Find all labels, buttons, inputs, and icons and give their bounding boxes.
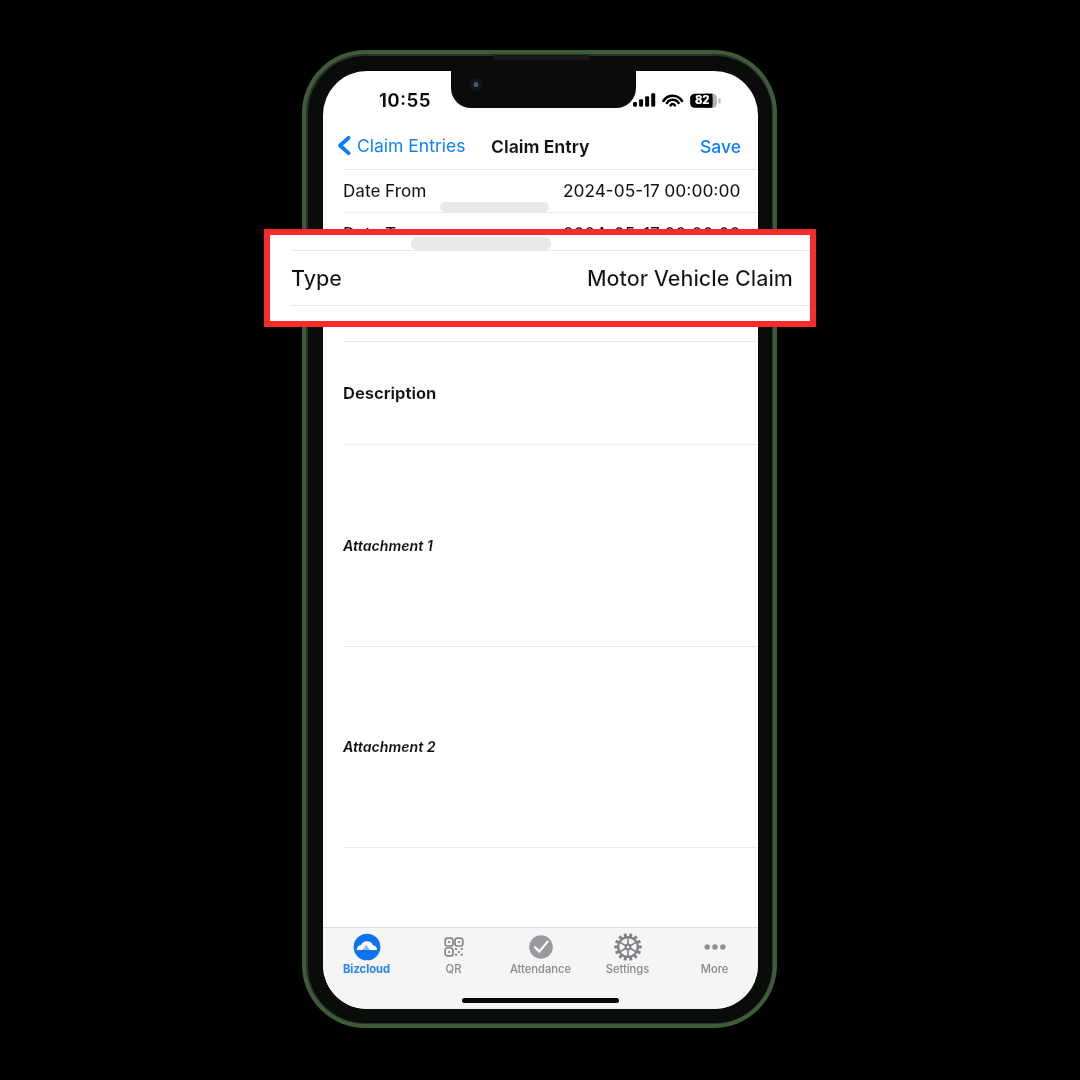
button[interactable]: Type [323, 256, 758, 299]
button[interactable]: Save [694, 125, 746, 167]
button[interactable]: Bizcloud [323, 927, 410, 987]
button[interactable]: More [671, 927, 758, 987]
button[interactable]: Date From [323, 170, 758, 213]
button[interactable]: Attendance [497, 927, 584, 987]
staticText: 82 [695, 93, 710, 107]
staticText: QR [410, 962, 497, 976]
button[interactable]: QR scanner [410, 927, 497, 987]
staticText: Bizcloud [323, 962, 410, 976]
staticText: Type [291, 265, 342, 291]
staticText: Claim Entries [357, 135, 466, 156]
staticText: Settings [584, 962, 671, 976]
staticText: Save [700, 136, 741, 157]
button[interactable]: Claim Entries [334, 124, 470, 166]
button[interactable]: Attachment 1 [323, 444, 758, 646]
staticText: Date From [343, 181, 427, 202]
button[interactable]: Description [323, 341, 758, 444]
staticText: No [717, 310, 741, 331]
staticText: Attachment 1 [343, 537, 433, 554]
staticText: Motor Vehicle Claim [578, 267, 741, 288]
button[interactable]: Is OT [323, 299, 758, 342]
button[interactable]: Settings [584, 927, 671, 987]
button[interactable]: Date To [323, 213, 758, 256]
staticText: More [671, 962, 758, 976]
staticText: Attachment 2 [343, 738, 436, 755]
button[interactable]: Attachment 2 [323, 646, 758, 847]
button[interactable]: Type [270, 250, 810, 305]
staticText: Description [343, 383, 437, 403]
staticText: Is OT [343, 310, 385, 331]
staticText: Date To [343, 224, 406, 245]
staticText: 10:55 [379, 89, 431, 111]
staticText: Attendance [497, 962, 584, 976]
staticText: Motor Vehicle Claim [587, 265, 793, 291]
staticText: 2024-05-17 00:00:00 [563, 224, 741, 245]
staticText: Claim Entry [491, 136, 590, 157]
staticText: 2024-05-17 00:00:00 [563, 181, 741, 202]
